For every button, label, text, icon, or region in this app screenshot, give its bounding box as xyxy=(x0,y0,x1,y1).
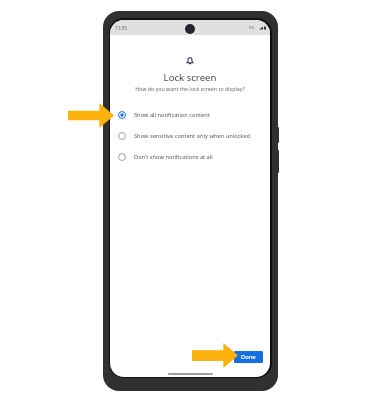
staticText: Lock screen xyxy=(110,71,270,84)
button[interactable]: Show all notification content xyxy=(110,111,270,119)
staticText: Show sensitive content only when unlocke… xyxy=(134,132,251,140)
staticText: 56 xyxy=(249,25,254,31)
button[interactable]: Done xyxy=(234,351,263,363)
staticText: Done xyxy=(241,353,256,361)
staticText: How do you want the lock screen to displ… xyxy=(110,85,270,92)
button[interactable]: Don't show notifications at all xyxy=(110,153,270,161)
other: Pointer xyxy=(192,343,238,368)
button[interactable]: Show sensitive content only when unlocke… xyxy=(110,132,270,140)
other: Pointer xyxy=(68,103,114,128)
staticText: Don't show notifications at all xyxy=(134,153,213,161)
staticText: Show all notification content xyxy=(134,111,210,119)
staticText: 11:35 xyxy=(115,25,127,31)
